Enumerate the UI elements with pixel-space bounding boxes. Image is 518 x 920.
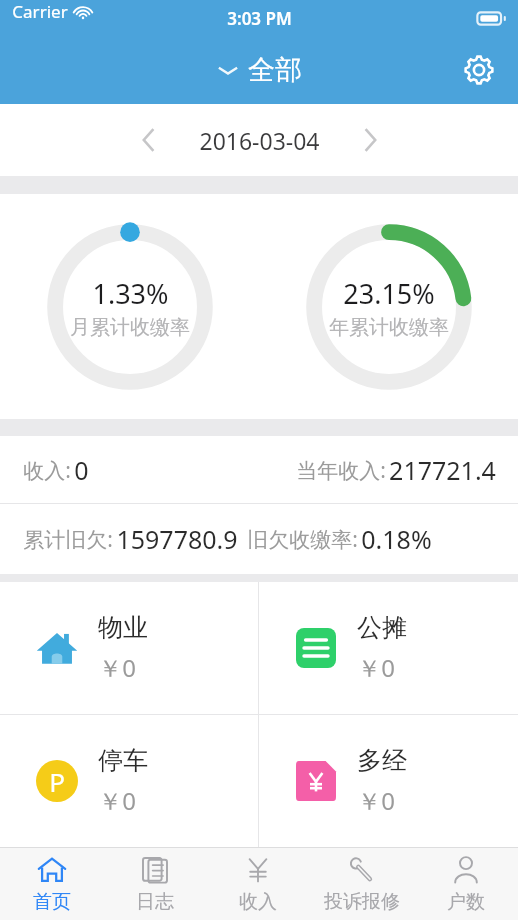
staticText: 23.15%: [343, 275, 435, 312]
staticText: ￥0: [357, 651, 395, 684]
staticText: 3:03 PM: [227, 7, 292, 30]
staticText: 日志: [136, 890, 174, 914]
button[interactable]: 公摊: [259, 582, 518, 714]
staticText: Carrier: [12, 0, 68, 23]
button[interactable]: 收入: [206, 848, 310, 920]
staticText: 旧欠收缴率:: [244, 525, 361, 554]
button[interactable]: 户数: [414, 848, 518, 920]
button[interactable]: 首页: [0, 848, 103, 920]
button[interactable]: 日志: [103, 848, 206, 920]
staticText: 217721.4: [389, 453, 496, 487]
staticText: 停车: [98, 745, 148, 776]
button[interactable]: P: [0, 715, 258, 847]
button[interactable]: 投诉报修: [310, 848, 414, 920]
button[interactable]: 物业: [0, 582, 258, 714]
button[interactable]: 累计旧欠:: [0, 504, 518, 574]
staticText: 累计旧欠:: [20, 525, 116, 554]
button[interactable]: 全部: [216, 53, 302, 87]
staticText: ￥0: [98, 651, 136, 684]
staticText: 1597780.9: [116, 522, 238, 556]
button[interactable]: Previous day: [125, 116, 173, 164]
staticText: 多经: [357, 745, 407, 776]
button[interactable]: 收入:: [0, 436, 518, 503]
button[interactable]: Next day: [346, 116, 394, 164]
staticText: 月累计收缴率: [70, 315, 190, 340]
staticText: 全部: [248, 53, 302, 87]
staticText: 0: [74, 453, 89, 487]
staticText: 0.18%: [361, 522, 432, 556]
staticText: 收入:: [20, 456, 74, 485]
staticText: 1.33%: [92, 275, 169, 312]
staticText: 年累计收缴率: [329, 315, 449, 340]
staticText: 收入: [239, 890, 277, 914]
staticText: 物业: [98, 612, 148, 643]
button[interactable]: 多经: [259, 715, 518, 847]
staticText: ￥0: [98, 784, 136, 817]
staticText: 公摊: [357, 612, 407, 643]
staticText: 户数: [447, 890, 485, 914]
button[interactable]: Settings: [458, 49, 500, 91]
staticText: 当年收入:: [293, 456, 389, 485]
staticText: P: [49, 764, 65, 799]
staticText: 首页: [33, 890, 71, 914]
staticText: 2016-03-04: [199, 125, 320, 156]
staticText: ￥0: [357, 784, 395, 817]
staticText: 投诉报修: [324, 890, 400, 914]
